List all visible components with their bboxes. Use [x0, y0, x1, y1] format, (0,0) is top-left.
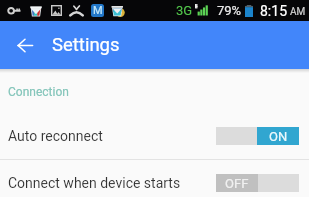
staticText: Connect when device starts	[8, 175, 181, 191]
staticText: OFF	[225, 176, 249, 191]
button[interactable]: Off	[216, 174, 299, 192]
staticText: 79%	[217, 3, 242, 18]
staticText: ON	[269, 129, 288, 144]
staticText: Auto reconnect	[8, 128, 103, 144]
staticText: AM	[290, 6, 306, 18]
button[interactable]: Auto reconnect	[0, 112, 309, 159]
staticText: 3G	[176, 3, 193, 18]
button[interactable]: On	[216, 127, 299, 145]
staticText: 8:15	[260, 3, 287, 19]
staticText: Settings	[52, 34, 120, 56]
button[interactable]: Back	[7, 28, 42, 63]
button[interactable]: Connect when device starts	[0, 160, 309, 197]
staticText: Connection	[8, 85, 69, 99]
staticText: M	[93, 4, 103, 17]
